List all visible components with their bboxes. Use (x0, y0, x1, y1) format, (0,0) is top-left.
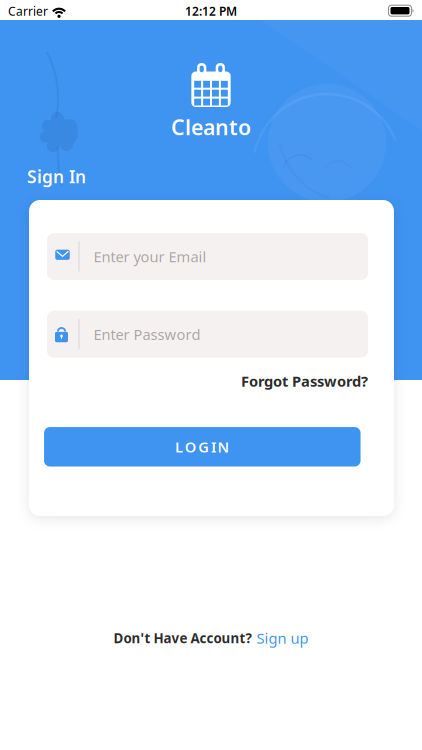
staticText: Carrier (8, 3, 48, 19)
staticText: O (185, 437, 197, 457)
button[interactable]: Enter Password (47, 311, 368, 358)
staticText: 12:12 PM (185, 3, 237, 19)
staticText: G (198, 437, 209, 457)
staticText: I (211, 437, 216, 457)
button[interactable]: L (44, 427, 361, 467)
staticText: Enter Password (93, 324, 200, 344)
button[interactable]: Forgot Password? (241, 371, 368, 391)
button[interactable]: Enter your Email (47, 233, 368, 280)
staticText: Cleanto (171, 113, 251, 141)
staticText: N (217, 437, 229, 457)
staticText: Forgot Password? (241, 371, 368, 391)
staticText: Don't Have Account? (113, 629, 251, 647)
staticText: Sign In (27, 165, 86, 188)
staticText: Sign up (256, 628, 308, 648)
button[interactable]: Sign up (256, 628, 308, 648)
staticText: Enter your Email (93, 247, 206, 266)
staticText: L (175, 437, 183, 457)
